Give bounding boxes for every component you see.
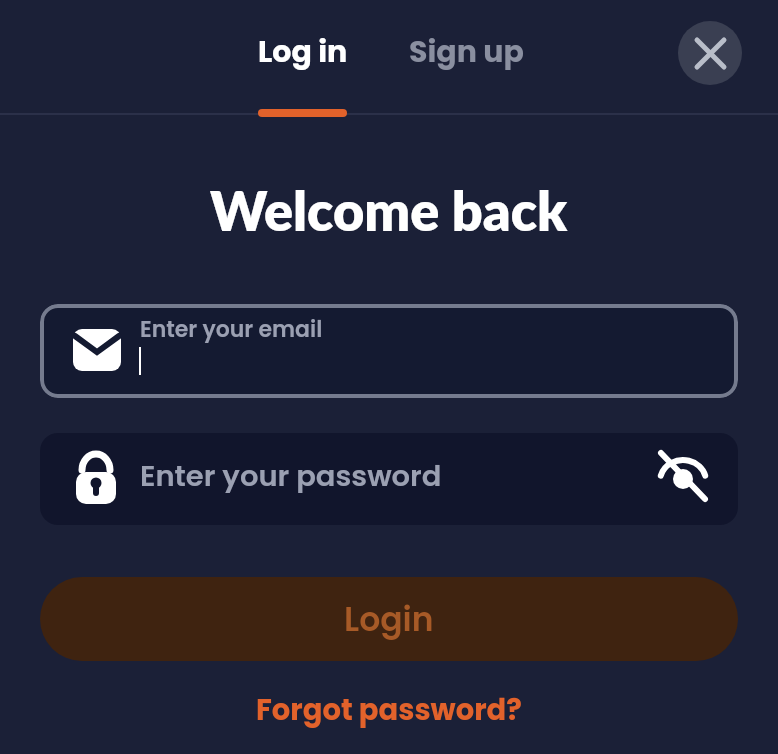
staticText: Forgot password? [256, 690, 522, 731]
button[interactable]: Enter your email [40, 304, 738, 398]
staticText: Welcome back [210, 178, 568, 242]
button[interactable]: Login [40, 577, 738, 661]
staticText: Log in [258, 31, 348, 73]
staticText: Login [344, 596, 434, 642]
staticText: Enter your password [140, 456, 442, 497]
staticText: Sign up [409, 31, 524, 73]
button[interactable] [678, 21, 742, 85]
button[interactable]: Forgot password? [256, 690, 522, 731]
button[interactable]: Enter your password [40, 433, 738, 525]
button[interactable] [660, 452, 706, 500]
button[interactable]: Sign up [406, 20, 526, 84]
button[interactable]: Log in [243, 20, 363, 84]
staticText: Enter your email [140, 314, 323, 345]
